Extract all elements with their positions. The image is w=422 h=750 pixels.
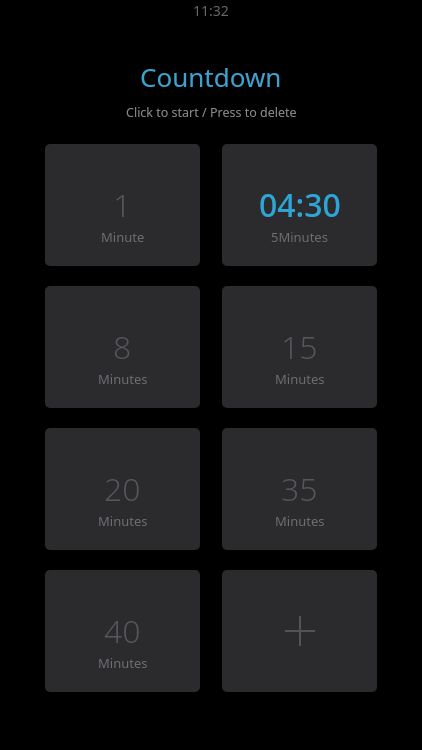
staticText: 1 (113, 183, 132, 227)
button[interactable]: 8 (45, 286, 200, 408)
staticText: Minutes (275, 512, 325, 530)
staticText: Minutes (275, 370, 325, 388)
button[interactable]: 1 (45, 144, 200, 266)
staticText: 5Minutes (271, 228, 328, 246)
staticText: Minutes (98, 512, 148, 530)
staticText: Click to start / Press to delete (126, 104, 297, 121)
staticText: 8 (113, 325, 132, 369)
staticText: 04:30 (259, 183, 341, 227)
staticText: Minutes (98, 370, 148, 388)
staticText: 15 (281, 325, 318, 369)
button[interactable]: 15 (222, 286, 377, 408)
staticText: Minutes (98, 654, 148, 672)
staticText: 11:32 (193, 1, 229, 20)
button[interactable]: 40 (45, 570, 200, 692)
button[interactable] (222, 570, 377, 692)
staticText: 40 (104, 609, 141, 653)
button[interactable]: 35 (222, 428, 377, 550)
staticText: Countdown (140, 59, 282, 94)
staticText: 35 (281, 467, 318, 511)
staticText: Minute (101, 228, 145, 246)
button[interactable]: 04:30 (222, 144, 377, 266)
staticText: 20 (104, 467, 141, 511)
button[interactable]: 20 (45, 428, 200, 550)
